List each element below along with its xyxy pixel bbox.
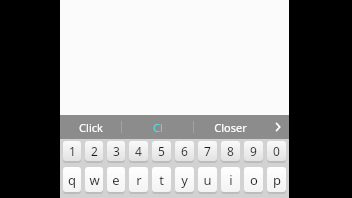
button[interactable]: r	[129, 167, 148, 192]
staticText: 4	[135, 143, 142, 159]
button[interactable]: w	[85, 167, 103, 192]
button[interactable]: i	[221, 167, 240, 192]
button[interactable]: 4	[129, 141, 148, 161]
staticText: u	[203, 171, 212, 189]
staticText: 8	[227, 143, 234, 159]
staticText: Closer	[214, 120, 247, 135]
button[interactable]: Closer	[194, 115, 267, 139]
staticText: 1	[69, 143, 76, 159]
button[interactable]: p	[267, 167, 286, 192]
button[interactable]: 8	[221, 141, 240, 161]
staticText: 3	[113, 143, 120, 159]
staticText: o	[250, 171, 258, 189]
staticText: Click	[79, 120, 103, 135]
button[interactable]: 1	[63, 141, 81, 161]
staticText: Cl	[153, 120, 163, 135]
staticText: 0	[273, 143, 280, 159]
button[interactable]: 0	[267, 141, 286, 161]
button[interactable]: Click	[60, 115, 121, 139]
staticText: 7	[204, 143, 211, 159]
staticText: 5	[158, 143, 165, 159]
button[interactable]: q	[63, 167, 81, 192]
button[interactable]: 7	[198, 141, 217, 161]
button[interactable]: 2	[85, 141, 103, 161]
staticText: w	[89, 171, 100, 189]
staticText: 9	[250, 143, 257, 159]
staticText: y	[181, 171, 188, 189]
staticText: e	[112, 171, 120, 189]
button[interactable]: 3	[107, 141, 125, 161]
staticText: q	[68, 171, 76, 189]
button[interactable]: Cl	[122, 115, 193, 139]
staticText: p	[273, 171, 281, 189]
button[interactable]: 5	[152, 141, 171, 161]
button[interactable]: Expand suggestions	[267, 115, 288, 139]
button[interactable]: t	[152, 167, 171, 192]
button[interactable]: e	[107, 167, 125, 192]
button[interactable]: u	[198, 167, 217, 192]
button[interactable]: o	[244, 167, 263, 192]
staticText: t	[159, 171, 164, 189]
staticText: r	[136, 171, 142, 189]
button[interactable]: 9	[244, 141, 263, 161]
staticText: 2	[91, 143, 98, 159]
button[interactable]: y	[175, 167, 194, 192]
staticText: 6	[181, 143, 188, 159]
staticText: i	[229, 171, 233, 189]
button[interactable]: 6	[175, 141, 194, 161]
